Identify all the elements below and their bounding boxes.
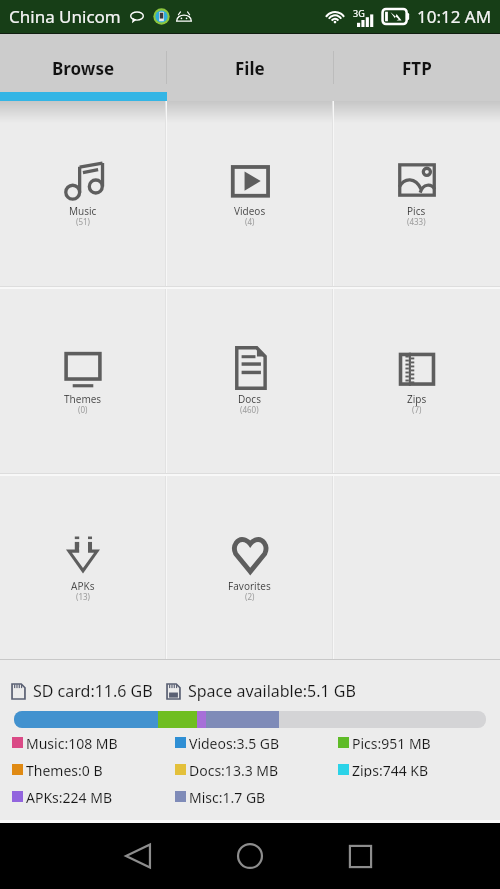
staticText: (4) <box>245 216 255 227</box>
staticText: (51) <box>76 216 90 227</box>
staticText: Videos <box>234 204 266 218</box>
staticText: Pics:951 MB <box>352 734 431 750</box>
button[interactable]: File <box>167 34 333 92</box>
staticText: APKs <box>71 579 95 593</box>
staticText: Docs <box>238 392 261 406</box>
staticText: Zips <box>407 392 427 406</box>
staticText: (460) <box>240 404 259 415</box>
staticText: APKs:224 MB <box>26 788 113 804</box>
staticText: Music:108 MB <box>26 734 118 750</box>
staticText: 10:12 AM <box>417 5 492 28</box>
staticText: FTP <box>402 57 432 80</box>
button[interactable]: Browse <box>0 34 166 92</box>
staticText: Zips:744 KB <box>352 761 429 777</box>
button[interactable]: Videos <box>166 101 333 286</box>
button[interactable]: Recents <box>338 834 382 878</box>
staticText: Browse <box>52 57 115 80</box>
button[interactable]: Music <box>0 101 166 286</box>
button[interactable]: Favorites <box>166 476 333 660</box>
button[interactable]: Pics <box>333 101 500 286</box>
staticText: Misc:1.7 GB <box>189 788 266 804</box>
button[interactable]: Themes <box>0 289 166 473</box>
staticText: Music <box>69 204 97 218</box>
staticText: File <box>235 57 265 80</box>
button[interactable]: Zips <box>333 289 500 473</box>
staticText: SD card:11.6 GB <box>33 680 153 702</box>
button[interactable]: Back <box>116 834 160 878</box>
button[interactable]: FTP <box>334 34 500 92</box>
staticText: (0) <box>78 404 88 415</box>
staticText: Favorites <box>228 579 271 593</box>
staticText: Space available:5.1 GB <box>188 680 356 702</box>
staticText: Pics <box>407 204 426 218</box>
staticText: Themes <box>64 392 102 406</box>
staticText: China Unicom <box>9 5 121 28</box>
button[interactable]: Home <box>228 834 272 878</box>
button[interactable]: Docs <box>166 289 333 473</box>
staticText: Videos:3.5 GB <box>189 734 280 750</box>
staticText: (2) <box>245 591 255 602</box>
staticText: (13) <box>76 591 90 602</box>
staticText: (433) <box>407 216 426 227</box>
button[interactable]: APKs <box>0 476 166 660</box>
staticText: 3G <box>353 7 365 19</box>
staticText: Docs:13.3 MB <box>189 761 279 777</box>
staticText: Themes:0 B <box>26 761 103 777</box>
staticText: (7) <box>412 404 422 415</box>
